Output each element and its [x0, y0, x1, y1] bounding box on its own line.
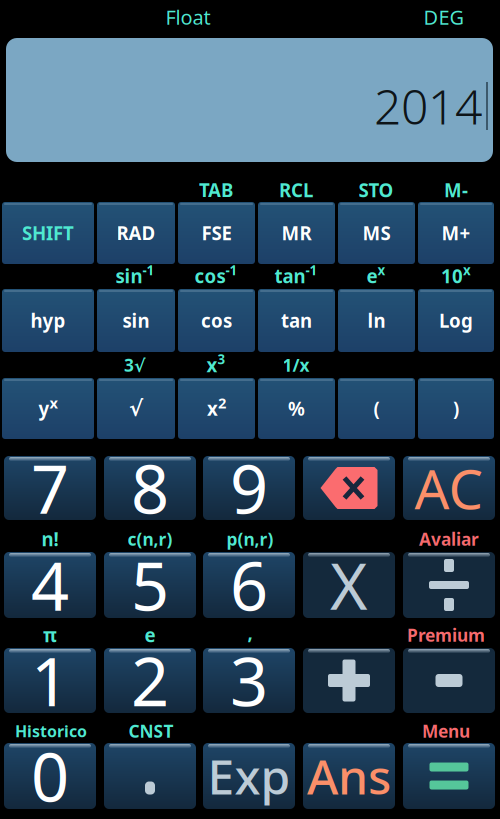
staticText: TAB — [199, 178, 233, 202]
button[interactable]: All Clear — [403, 456, 495, 520]
staticText: 2 — [131, 636, 169, 725]
staticText: x — [463, 261, 471, 279]
staticText: Exp — [207, 744, 290, 808]
button[interactable]: y — [2, 378, 94, 439]
staticText: DEG — [423, 4, 464, 30]
staticText: 7 — [31, 444, 69, 532]
staticText: 8 — [131, 444, 169, 532]
button[interactable]: Decimal — [104, 743, 196, 809]
button[interactable]: x — [178, 378, 255, 439]
staticText: 6 — [230, 541, 268, 629]
button[interactable]: sin — [97, 289, 175, 352]
button[interactable]: M+ — [418, 202, 494, 264]
staticText: -1 — [305, 261, 317, 279]
staticText: x — [49, 393, 57, 413]
staticText: 2 — [218, 393, 226, 413]
staticText: Menu — [422, 719, 470, 742]
staticText: e — [144, 623, 155, 647]
button[interactable]: Divide — [403, 552, 495, 618]
button[interactable]: 5 — [104, 552, 196, 618]
button[interactable]: Minus — [403, 648, 495, 713]
button[interactable]: FSE — [178, 202, 255, 264]
staticText: √ — [129, 396, 143, 421]
staticText: RAD — [116, 221, 155, 245]
staticText: M- — [444, 178, 468, 202]
button[interactable]: ln — [338, 289, 415, 352]
staticText: 9 — [230, 444, 268, 532]
staticText: x — [206, 353, 217, 377]
button[interactable]: 2 — [104, 648, 196, 713]
staticText: RCL — [279, 178, 313, 202]
button[interactable]: Delete — [303, 456, 395, 520]
staticText: CNST — [128, 719, 173, 742]
staticText: c(n,r) — [127, 527, 172, 550]
button[interactable]: % — [258, 378, 335, 439]
button[interactable]: MS — [338, 202, 415, 264]
button[interactable]: DEG — [423, 4, 464, 30]
button[interactable]: hyp — [2, 289, 94, 352]
staticText: 3 — [217, 350, 225, 368]
button[interactable]: 4 — [4, 552, 96, 618]
staticText: p(n,r) — [226, 527, 273, 550]
button[interactable]: Ans — [303, 743, 395, 809]
button[interactable]: SHIFT — [2, 202, 94, 264]
staticText: Historico — [15, 720, 87, 742]
staticText: y — [38, 396, 49, 421]
staticText: % — [288, 396, 305, 421]
staticText: Premium — [407, 623, 485, 646]
staticText: X — [330, 542, 368, 627]
button[interactable]: Equals — [403, 743, 495, 809]
staticText: -1 — [142, 261, 154, 279]
staticText: M+ — [441, 221, 470, 245]
button[interactable]: 8 — [104, 456, 196, 520]
staticText: , — [247, 620, 252, 644]
staticText: 1/x — [282, 353, 309, 376]
staticText: Float — [165, 4, 210, 30]
staticText: Log — [439, 308, 473, 333]
staticText: 1 — [31, 636, 69, 725]
staticText: 5 — [131, 541, 169, 629]
staticText: 4 — [31, 541, 69, 629]
staticText: sin — [122, 308, 149, 333]
staticText: π — [43, 623, 57, 647]
staticText: FSE — [201, 221, 231, 245]
button[interactable]: cos — [178, 289, 255, 352]
button[interactable]: 0 — [4, 743, 96, 809]
button[interactable]: RAD — [97, 202, 175, 264]
staticText: 3√ — [124, 353, 146, 376]
button[interactable]: Exp — [203, 743, 295, 809]
staticText: 3 — [230, 636, 268, 725]
button[interactable]: 1 — [4, 648, 96, 713]
button[interactable]: Log — [418, 289, 494, 352]
staticText: ) — [453, 396, 459, 421]
staticText: Ans — [307, 744, 391, 808]
button[interactable]: 9 — [203, 456, 295, 520]
button[interactable]: ( — [338, 378, 415, 439]
staticText: hyp — [30, 308, 65, 333]
staticText: 10 — [441, 264, 463, 288]
staticText: -1 — [225, 261, 237, 279]
staticText: x — [207, 396, 218, 421]
button[interactable]: Plus — [303, 648, 395, 713]
staticText: x — [377, 261, 385, 279]
staticText: cos — [194, 264, 225, 288]
staticText: AC — [414, 452, 483, 524]
button[interactable]: MR — [258, 202, 335, 264]
staticText: tan — [274, 264, 305, 288]
button[interactable]: ) — [418, 378, 494, 439]
button[interactable]: 7 — [4, 456, 96, 520]
button[interactable]: tan — [258, 289, 335, 352]
staticText: STO — [358, 178, 393, 202]
button[interactable]: √ — [97, 378, 175, 439]
staticText: cos — [201, 308, 232, 333]
button[interactable]: 3 — [203, 648, 295, 713]
staticText: sin — [115, 264, 142, 288]
staticText: 0 — [31, 732, 69, 819]
staticText: ln — [367, 308, 385, 333]
staticText: SHIFT — [22, 221, 74, 245]
button[interactable]: Multiply — [303, 552, 395, 618]
staticText: Avaliar — [419, 527, 479, 550]
staticText: MS — [362, 221, 390, 245]
button[interactable]: Float — [165, 4, 210, 30]
button[interactable]: 6 — [203, 552, 295, 618]
